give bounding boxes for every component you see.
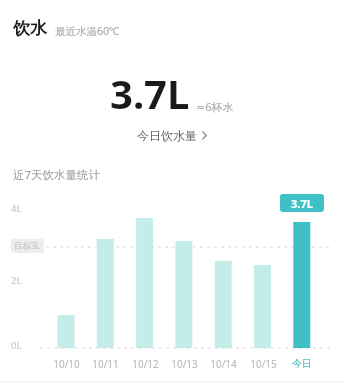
staticText: 2L	[11, 274, 22, 287]
button[interactable]: 10/12	[125, 357, 165, 371]
staticText: 饮水	[13, 18, 47, 39]
staticText: 0L	[11, 339, 22, 352]
staticText: 3.7L	[110, 66, 190, 120]
staticText: 10/14	[210, 357, 237, 371]
staticText: 3.7L	[291, 196, 313, 211]
button[interactable]: 10/11	[85, 357, 125, 371]
staticText: ≈6杯水	[196, 99, 234, 114]
staticText: 10/10	[53, 357, 80, 371]
staticText: 目标3L	[14, 240, 41, 252]
staticText: 10/13	[171, 357, 198, 371]
button[interactable]: 今日饮水量	[137, 128, 207, 143]
button[interactable]: 今日	[282, 357, 322, 370]
button[interactable]: 10/14	[203, 357, 243, 371]
button[interactable]: 3.7L	[280, 194, 324, 212]
staticText: 最近水温60℃	[55, 24, 120, 38]
staticText: 近7天饮水量统计	[13, 167, 101, 183]
button[interactable]: 10/10	[46, 357, 86, 371]
button[interactable]: 饮水	[13, 18, 120, 39]
staticText: 今日饮水量	[137, 128, 197, 143]
staticText: 今日	[292, 357, 312, 370]
staticText: 4L	[11, 202, 22, 215]
staticText: 10/15	[250, 357, 277, 371]
button[interactable]: 10/15	[243, 357, 283, 371]
staticText: 10/12	[132, 357, 159, 371]
button[interactable]: 10/13	[164, 357, 204, 371]
staticText: 10/11	[92, 357, 119, 371]
